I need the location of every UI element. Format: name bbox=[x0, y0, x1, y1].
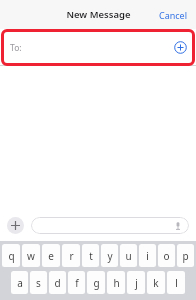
staticText: a bbox=[17, 276, 23, 290]
button[interactable]: g bbox=[87, 271, 105, 294]
button[interactable]: Dictate bbox=[31, 217, 189, 234]
button[interactable]: Cancel bbox=[151, 5, 196, 25]
button[interactable]: o bbox=[158, 244, 175, 267]
button[interactable]: a bbox=[11, 271, 28, 294]
staticText: p bbox=[182, 249, 189, 263]
staticText: l bbox=[175, 276, 178, 290]
staticText: f bbox=[75, 276, 79, 290]
staticText: t bbox=[89, 249, 93, 263]
button[interactable]: h bbox=[107, 271, 125, 294]
button[interactable]: t bbox=[82, 244, 99, 267]
staticText: h bbox=[113, 276, 120, 290]
button[interactable]: e bbox=[42, 244, 60, 267]
button[interactable]: w bbox=[22, 244, 40, 267]
staticText: w bbox=[27, 249, 35, 263]
staticText: d bbox=[54, 276, 61, 290]
button[interactable]: f bbox=[68, 271, 85, 294]
button[interactable]: s bbox=[30, 271, 47, 294]
button[interactable]: Attach bbox=[7, 217, 24, 234]
button[interactable]: r bbox=[62, 244, 80, 267]
staticText: i bbox=[146, 249, 149, 263]
other: Dictate bbox=[173, 221, 183, 231]
staticText: To: bbox=[10, 42, 22, 54]
button[interactable]: l bbox=[167, 271, 185, 294]
staticText: e bbox=[48, 249, 54, 263]
button[interactable]: u bbox=[120, 244, 137, 267]
staticText: r bbox=[69, 249, 74, 263]
button[interactable]: j bbox=[127, 271, 145, 294]
staticText: g bbox=[93, 276, 100, 290]
staticText: k bbox=[153, 276, 159, 290]
button[interactable]: d bbox=[49, 271, 66, 294]
staticText: New Message bbox=[66, 8, 131, 21]
staticText: s bbox=[36, 276, 41, 290]
staticText: Cancel bbox=[159, 9, 188, 21]
staticText: y bbox=[107, 249, 113, 263]
button[interactable]: k bbox=[147, 271, 165, 294]
button[interactable]: p bbox=[177, 244, 194, 267]
button[interactable]: Add contact bbox=[174, 41, 187, 54]
staticText: o bbox=[163, 249, 170, 263]
staticText: j bbox=[135, 276, 138, 290]
button[interactable]: To: bbox=[0, 29, 196, 66]
button[interactable]: y bbox=[101, 244, 118, 267]
button[interactable]: q bbox=[2, 244, 20, 267]
button[interactable]: i bbox=[139, 244, 156, 267]
staticText: q bbox=[8, 249, 15, 263]
staticText: u bbox=[125, 249, 132, 263]
